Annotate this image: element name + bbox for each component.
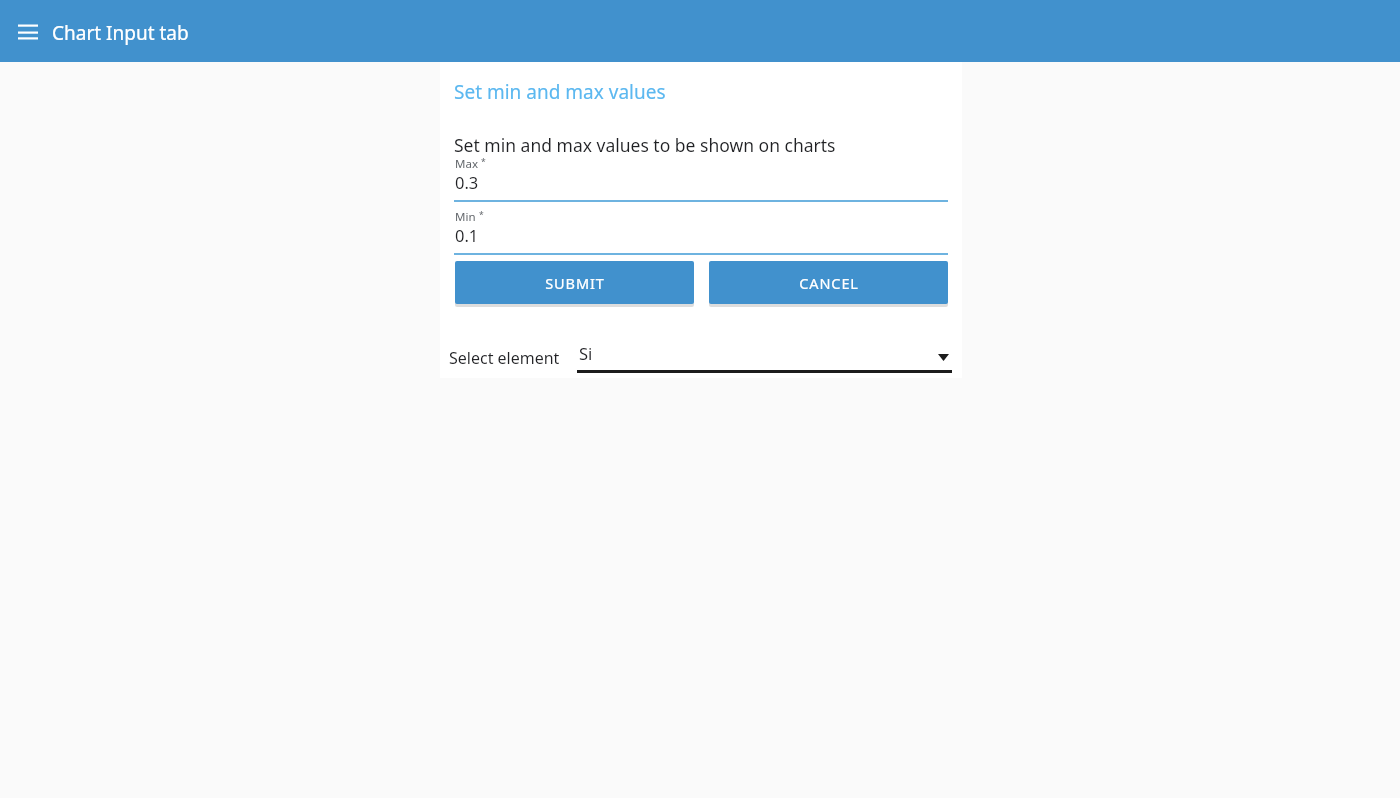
other: Open element dropdown (938, 354, 949, 361)
staticText: 0.3 (455, 171, 479, 193)
staticText: CANCEL (799, 273, 859, 293)
button[interactable]: CANCEL (709, 261, 948, 304)
button[interactable]: SUBMIT (455, 261, 694, 304)
staticText: Set min and max values to be shown on ch… (454, 133, 836, 157)
staticText: 0.1 (455, 224, 479, 246)
staticText: Min (455, 209, 476, 225)
staticText: Max (455, 156, 478, 172)
staticText: Si (579, 342, 593, 364)
staticText: * (481, 156, 486, 168)
staticText: SUBMIT (545, 273, 605, 293)
staticText: Set min and max values (454, 79, 666, 105)
button[interactable]: Max (454, 155, 948, 203)
button[interactable]: Si (577, 340, 952, 374)
button[interactable]: Min (454, 208, 948, 256)
button[interactable]: Open navigation menu (10, 13, 46, 49)
staticText: Chart Input tab (52, 20, 189, 46)
staticText: Select element (449, 347, 560, 369)
staticText: * (479, 209, 484, 221)
